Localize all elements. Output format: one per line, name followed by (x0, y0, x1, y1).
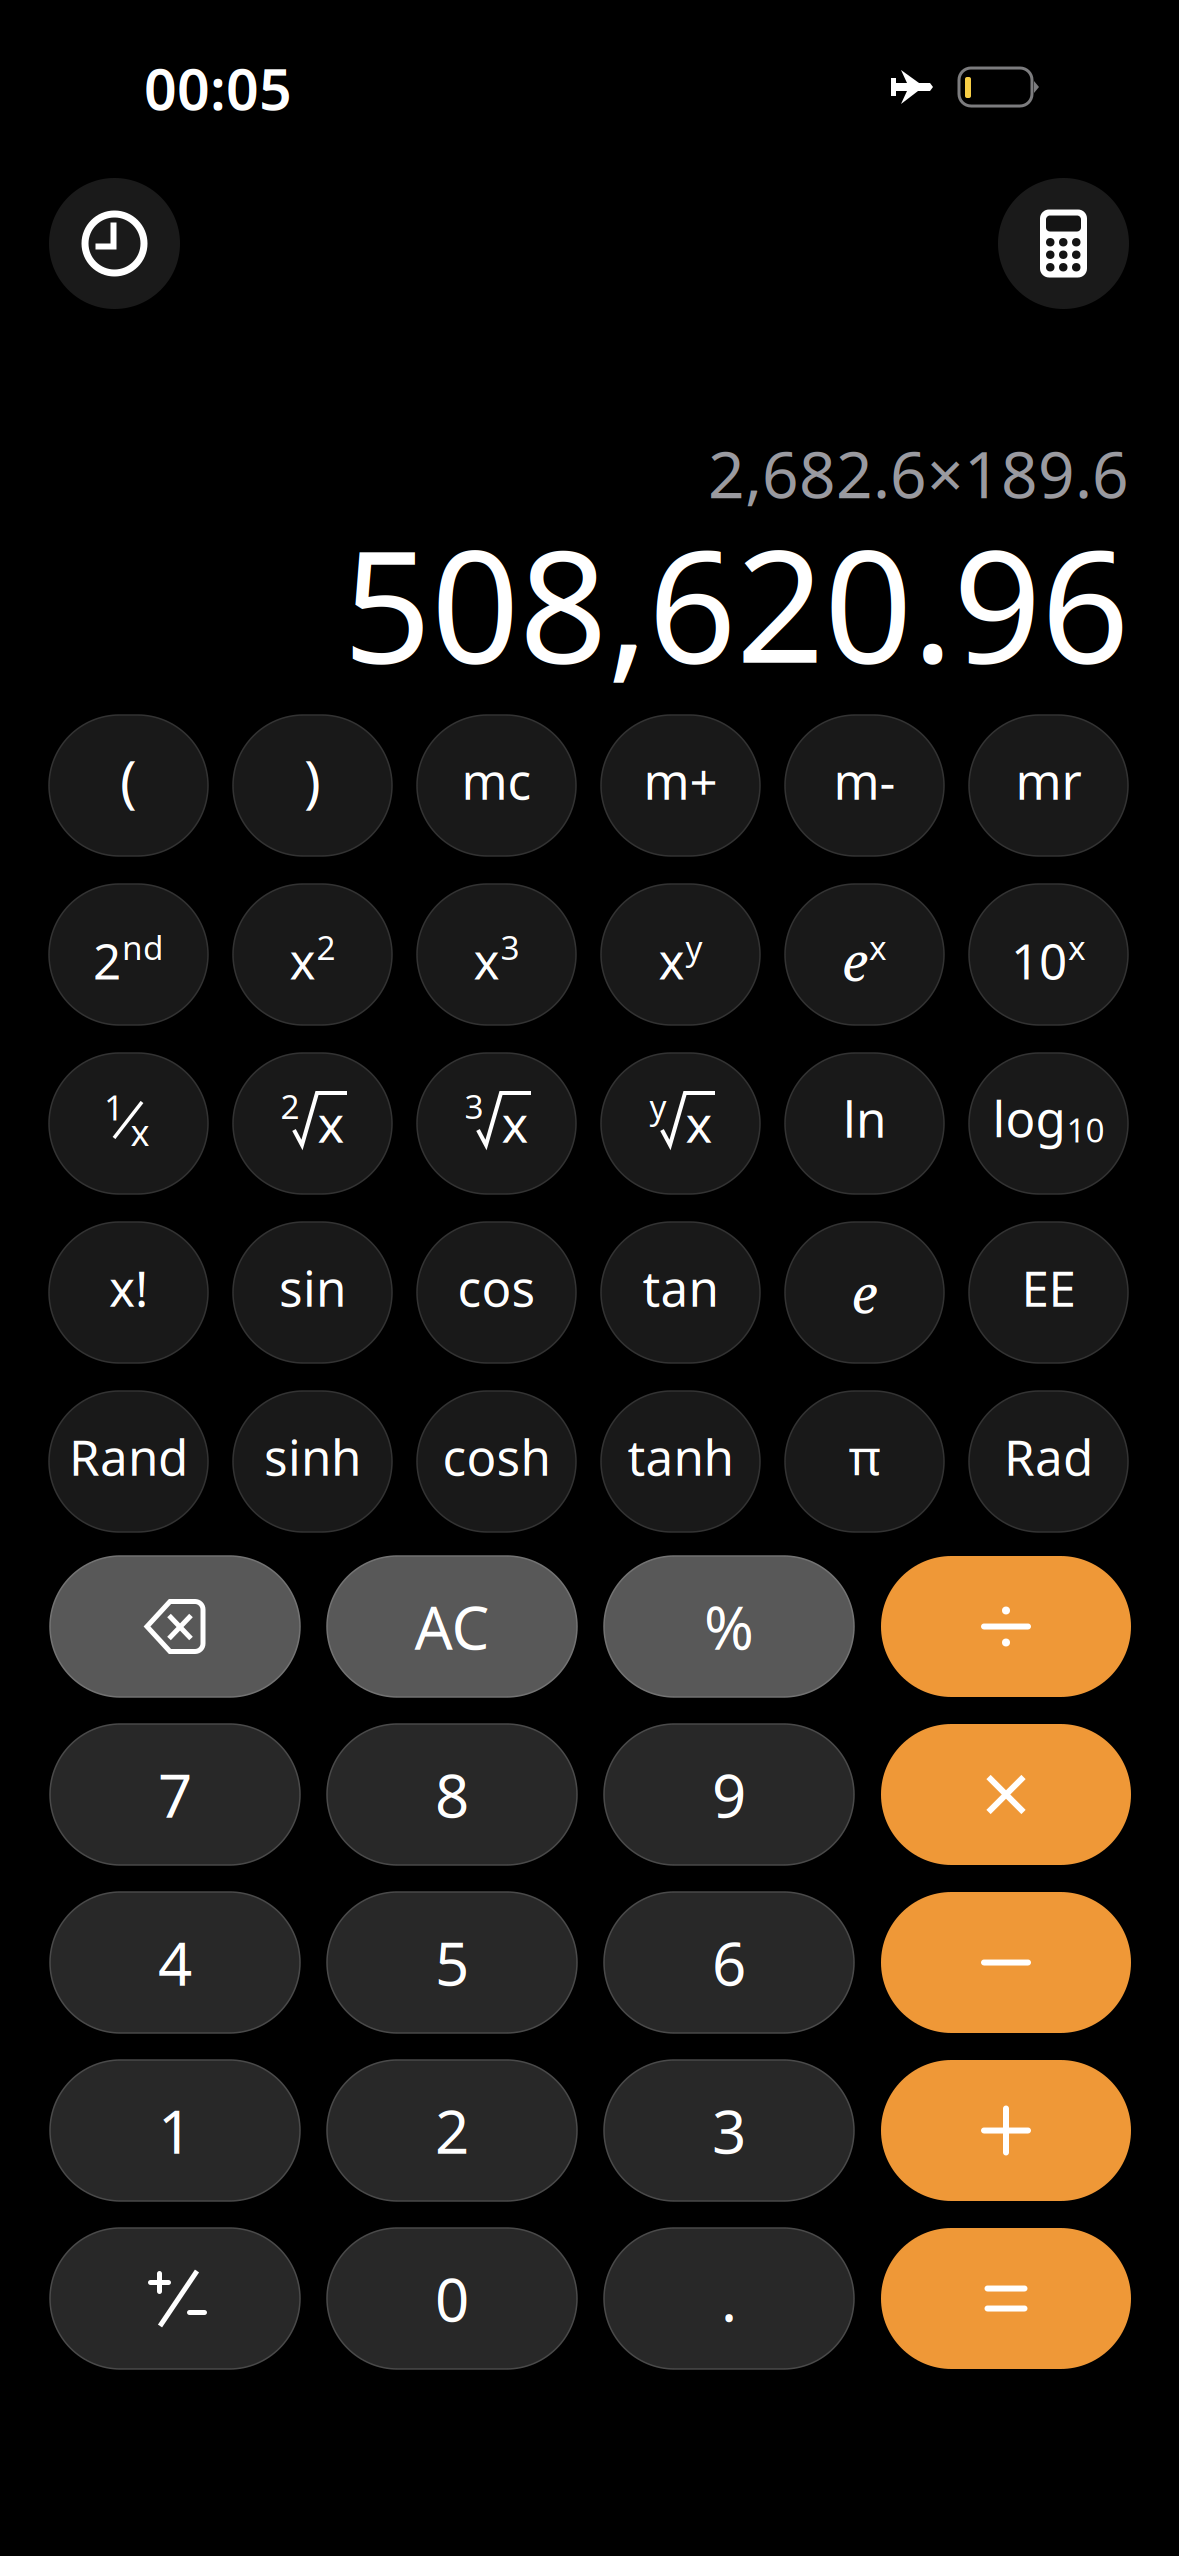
button[interactable]: Rad (969, 1391, 1128, 1532)
staticText: Rad (1004, 1424, 1093, 1489)
staticText: 10 (1011, 928, 1067, 993)
staticText: e (851, 1256, 877, 1329)
button[interactable]: 0 (327, 2228, 577, 2369)
staticText: EE (1021, 1255, 1075, 1320)
button[interactable]: x (233, 884, 392, 1025)
button[interactable]: tan (601, 1222, 760, 1363)
staticText: nd (122, 925, 164, 969)
button[interactable]: 3 (604, 2060, 854, 2201)
staticText: 5 (435, 1923, 469, 2002)
button[interactable] (881, 1556, 1131, 1697)
button[interactable]: ) (233, 715, 392, 856)
button[interactable]: 2 (49, 884, 208, 1025)
staticText: cos (457, 1255, 535, 1320)
staticText: x (473, 928, 499, 993)
button[interactable]: 1 (49, 1053, 208, 1194)
button[interactable]: % (604, 1556, 854, 1697)
button[interactable]: x! (49, 1222, 208, 1363)
staticText: x (501, 1089, 528, 1157)
staticText: . (721, 2259, 737, 2338)
staticText: tan (642, 1255, 718, 1320)
button[interactable]: 8 (327, 1724, 577, 1865)
button[interactable]: x (601, 884, 760, 1025)
staticText: 0 (435, 2259, 469, 2338)
button[interactable]: History (49, 178, 180, 309)
button[interactable]: 1 (50, 2060, 300, 2201)
button[interactable]: e (785, 1222, 944, 1363)
staticText: y (685, 925, 702, 969)
button[interactable]: Calculator mode (998, 178, 1129, 309)
staticText: ( (120, 743, 137, 818)
staticText: 00:05 (144, 50, 292, 126)
button[interactable]: mr (969, 715, 1128, 856)
button[interactable]: x (417, 884, 576, 1025)
staticText: x (685, 1089, 712, 1157)
staticText: x (289, 928, 315, 993)
button[interactable]: m- (785, 715, 944, 856)
staticText: 1 (104, 1084, 124, 1130)
staticText: 6 (712, 1923, 746, 2002)
button[interactable]: 2 (233, 1053, 392, 1194)
button[interactable]: 7 (50, 1724, 300, 1865)
button[interactable]: tanh (601, 1391, 760, 1532)
button[interactable]: ( (49, 715, 208, 856)
button[interactable]: e (785, 884, 944, 1025)
staticText: 8 (435, 1755, 469, 1834)
button[interactable]: AC (327, 1556, 577, 1697)
button[interactable]: ln (785, 1053, 944, 1194)
button[interactable]: 6 (604, 1892, 854, 2033)
button[interactable]: 5 (327, 1892, 577, 2033)
button[interactable]: sin (233, 1222, 392, 1363)
staticText: 2 (435, 2091, 469, 2170)
button[interactable]: 9 (604, 1724, 854, 1865)
staticText: m- (833, 748, 895, 813)
staticText: Rand (69, 1424, 188, 1489)
button[interactable]: cosh (417, 1391, 576, 1532)
staticText: x (658, 928, 684, 993)
staticText: mr (1015, 748, 1081, 813)
button[interactable] (50, 2228, 300, 2369)
staticText: % (704, 1587, 754, 1666)
button[interactable]: π (785, 1391, 944, 1532)
button[interactable]: m+ (601, 715, 760, 856)
button[interactable]: log (969, 1053, 1128, 1194)
staticText: sin (279, 1255, 346, 1320)
staticText: 2 (316, 925, 335, 969)
staticText: tanh (627, 1424, 733, 1489)
button[interactable]: mc (417, 715, 576, 856)
staticText: 2 (280, 1084, 299, 1128)
staticText: x (130, 1108, 149, 1156)
staticText: 4 (158, 1923, 192, 2002)
staticText: log (992, 1085, 1065, 1151)
button[interactable]: EE (969, 1222, 1128, 1363)
button[interactable]: 2 (327, 2060, 577, 2201)
button[interactable] (881, 1892, 1131, 2033)
staticText: 9 (712, 1755, 746, 1834)
button[interactable]: sinh (233, 1391, 392, 1532)
button[interactable]: 10 (969, 884, 1128, 1025)
staticText: ln (843, 1086, 886, 1151)
button[interactable]: Rand (49, 1391, 208, 1532)
staticText: 2,682.6×189.6 (708, 431, 1129, 516)
button[interactable]: Delete (50, 1556, 300, 1697)
staticText: 2 (93, 928, 121, 993)
button[interactable]: cos (417, 1222, 576, 1363)
staticText: cosh (442, 1424, 550, 1489)
staticText: 7 (158, 1755, 192, 1834)
button[interactable] (881, 2228, 1131, 2369)
staticText: mc (461, 748, 531, 813)
button[interactable]: 4 (50, 1892, 300, 2033)
button[interactable]: y (601, 1053, 760, 1194)
button[interactable]: 3 (417, 1053, 576, 1194)
staticText: 3 (500, 925, 519, 969)
button[interactable] (881, 1724, 1131, 1865)
staticText: sinh (264, 1424, 361, 1489)
staticText: x (869, 925, 887, 969)
staticText: 1 (158, 2091, 192, 2170)
button[interactable]: . (604, 2228, 854, 2369)
staticText: π (848, 1424, 880, 1489)
button[interactable] (881, 2060, 1131, 2201)
staticText: x (317, 1089, 344, 1157)
staticText: x (1068, 925, 1086, 969)
staticText: 10 (1066, 1107, 1104, 1152)
